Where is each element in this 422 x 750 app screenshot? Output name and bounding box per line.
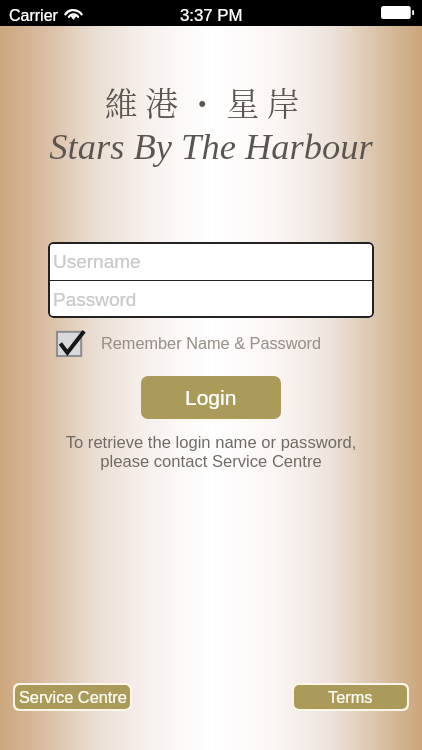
staticText: Terms — [328, 688, 373, 706]
staticText: Carrier — [9, 7, 58, 25]
button[interactable]: Service Centre — [15, 685, 130, 709]
staticText: To retrieve the login name or password, … — [0, 433, 422, 471]
staticText: Username — [53, 251, 141, 272]
button[interactable]: Password — [48, 281, 374, 318]
staticText: 3:37 PM — [180, 6, 243, 25]
button[interactable]: Terms — [294, 685, 407, 709]
button[interactable]: Login — [141, 376, 281, 419]
staticText: 維港・星岸 — [0, 78, 417, 125]
button[interactable]: Remember Name & Password — [57, 330, 322, 356]
staticText: Password — [53, 289, 137, 310]
staticText: Login — [185, 386, 237, 409]
staticText: Stars By The Harbour — [0, 126, 422, 166]
other: Battery — [381, 6, 414, 19]
staticText: Remember Name & Password — [101, 334, 322, 352]
other: Wi-Fi — [65, 7, 82, 20]
staticText: Service Centre — [19, 688, 127, 706]
button[interactable]: Username — [48, 242, 374, 280]
